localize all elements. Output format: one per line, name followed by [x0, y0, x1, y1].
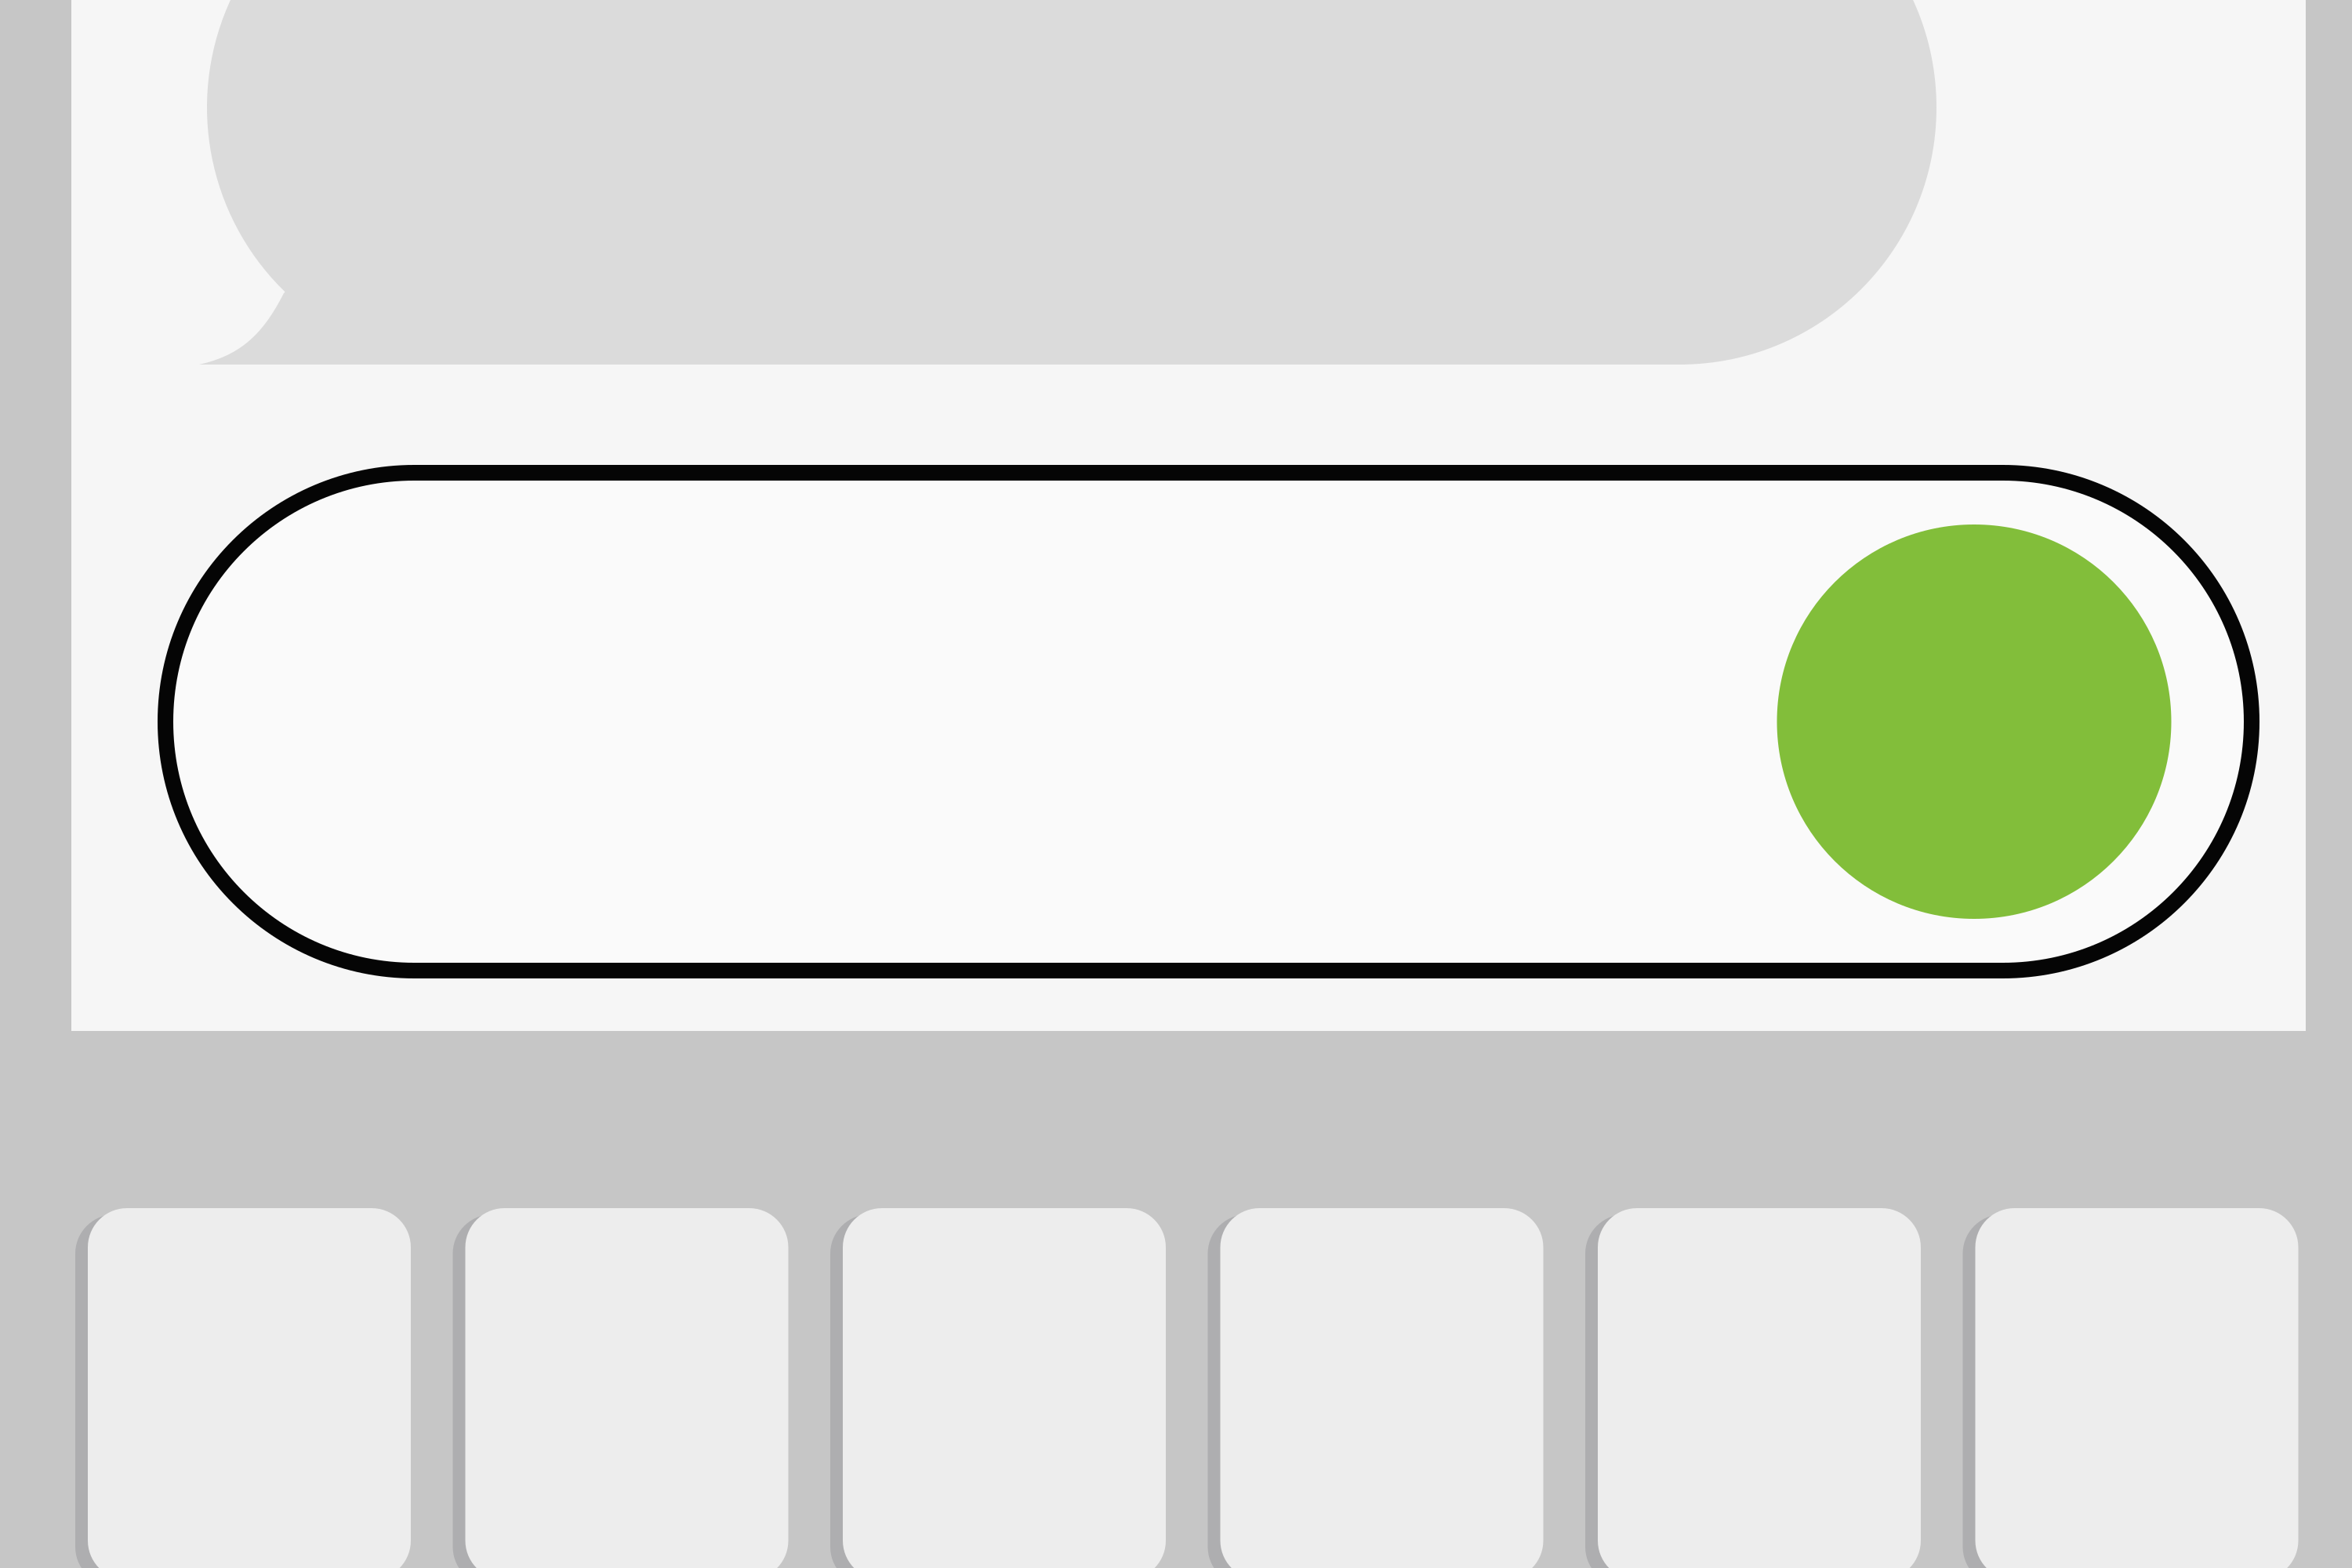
- button[interactable]: Send: [1777, 524, 2171, 919]
- button[interactable]: Keyboard key: [453, 1208, 830, 1568]
- button[interactable]: Keyboard key: [75, 1208, 453, 1568]
- button[interactable]: Keyboard key: [830, 1208, 1208, 1568]
- button[interactable]: Keyboard key: [1585, 1208, 1963, 1568]
- button[interactable]: Keyboard key: [1963, 1208, 2340, 1568]
- button[interactable]: Keyboard key: [1208, 1208, 1585, 1568]
- button[interactable]: Message text field: [158, 465, 2259, 978]
